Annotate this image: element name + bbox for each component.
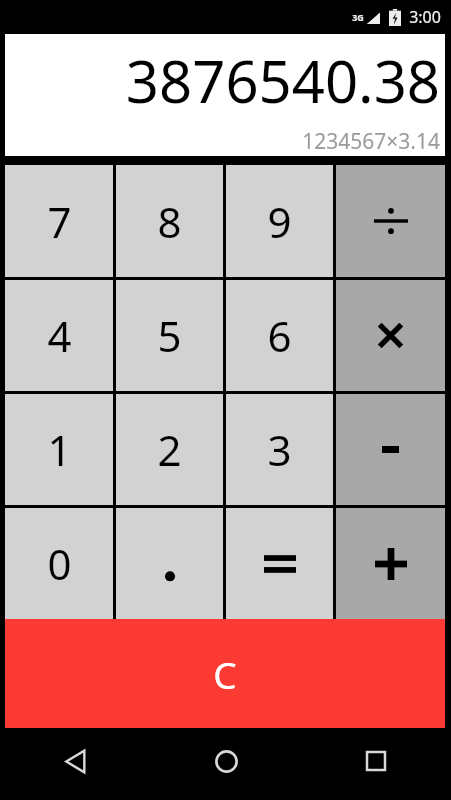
staticText: 3 — [267, 421, 292, 478]
button[interactable]: Plus — [336, 508, 445, 619]
staticText: 3:00 — [409, 6, 441, 28]
button[interactable]: 6 — [226, 280, 333, 391]
other: Decimal point — [164, 542, 176, 586]
other: Plus — [375, 548, 407, 580]
button[interactable]: 9 — [226, 165, 333, 277]
staticText: 3876540.38 — [125, 41, 440, 120]
button[interactable]: Multiply — [336, 280, 445, 391]
button[interactable]: Home — [151, 729, 301, 793]
button[interactable]: 0 — [5, 508, 113, 619]
button[interactable]: Equals — [226, 508, 333, 619]
button[interactable]: 2 — [116, 394, 223, 505]
staticText: 1234567×3.14 — [302, 127, 440, 156]
staticText: 8 — [157, 193, 182, 250]
button[interactable]: 5 — [116, 280, 223, 391]
staticText: 5 — [157, 307, 182, 364]
button[interactable]: C — [5, 619, 445, 728]
button[interactable]: Back — [0, 729, 151, 793]
button[interactable]: 4 — [5, 280, 113, 391]
staticText: 4 — [47, 307, 72, 364]
button[interactable]: Minus — [336, 394, 445, 505]
button[interactable]: 8 — [116, 165, 223, 277]
staticText: 1 — [47, 421, 72, 478]
staticText: 2 — [157, 421, 182, 478]
other: Multiply — [377, 322, 404, 349]
other: Equals — [264, 553, 296, 575]
button[interactable]: Decimal point — [116, 508, 223, 619]
button[interactable]: 1 — [5, 394, 113, 505]
button[interactable]: 7 — [5, 165, 113, 277]
staticText: C — [213, 649, 237, 699]
button[interactable]: Recents — [301, 729, 451, 793]
button[interactable]: Divide — [336, 165, 445, 277]
staticText: 7 — [47, 193, 72, 250]
button[interactable]: 3 — [226, 394, 333, 505]
staticText: 6 — [267, 307, 292, 364]
staticText: 0 — [47, 535, 72, 592]
staticText: 9 — [267, 193, 292, 250]
other: Divide — [374, 204, 408, 238]
staticText: 3G — [352, 11, 364, 23]
